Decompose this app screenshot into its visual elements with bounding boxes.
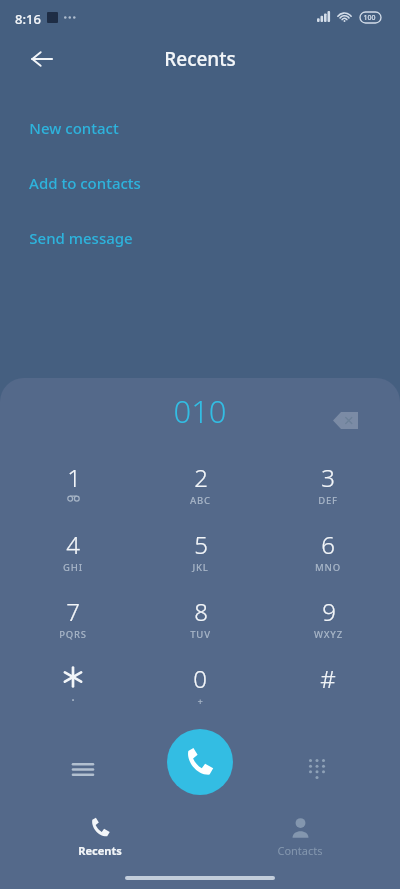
staticText: 2 [194, 461, 208, 494]
button[interactable]: 3 [273, 461, 383, 525]
button[interactable]: Send message [0, 215, 360, 261]
button[interactable]: 5 [145, 528, 255, 592]
button[interactable]: Recents [0, 806, 200, 868]
button[interactable]: Backspace [325, 400, 365, 440]
staticText: 100 [363, 13, 376, 23]
button[interactable]: New contact [0, 105, 360, 151]
staticText: + [197, 695, 204, 708]
staticText: Contacts [277, 843, 323, 858]
staticText: 1 [67, 461, 81, 494]
button[interactable]: More options [59, 745, 107, 793]
button[interactable]: Add to contacts [0, 160, 360, 206]
staticText: MNO [315, 561, 341, 574]
staticText: · [71, 692, 75, 707]
button[interactable]: 7 [18, 595, 128, 659]
staticText: WXYZ [314, 628, 343, 641]
staticText: PQRS [59, 628, 87, 641]
button[interactable]: 6 [273, 528, 383, 592]
staticText: New contact [29, 118, 119, 138]
button[interactable]: 9 [273, 595, 383, 659]
button[interactable]: 8 [145, 595, 255, 659]
button[interactable]: # [273, 662, 383, 726]
button[interactable]: Call [167, 729, 233, 795]
staticText: 0 [193, 662, 207, 695]
staticText: 3 [321, 461, 335, 494]
button[interactable]: 0 [145, 662, 255, 726]
staticText: Send message [29, 228, 133, 248]
button[interactable]: 4 [18, 528, 128, 592]
staticText: 6 [321, 528, 335, 561]
staticText: 9 [322, 595, 336, 628]
staticText: Recents [164, 46, 236, 72]
staticText: 5 [194, 528, 208, 561]
button[interactable]: Keypad [293, 745, 341, 793]
staticText: 7 [66, 595, 80, 628]
staticText: TUV [190, 628, 211, 641]
button[interactable]: 2 [145, 461, 255, 525]
staticText: Add to contacts [29, 173, 141, 193]
staticText: Recents [78, 843, 122, 858]
staticText: 8:16 [15, 10, 41, 28]
button[interactable]: Back [22, 39, 62, 79]
button[interactable]: Contacts [200, 806, 400, 868]
staticText: 010 [173, 390, 227, 432]
staticText: 8 [194, 595, 208, 628]
staticText: # [320, 662, 336, 695]
staticText: GHI [63, 561, 83, 574]
staticText: JKL [192, 561, 209, 574]
button[interactable]: · [18, 662, 128, 726]
staticText: 4 [66, 528, 80, 561]
button[interactable]: 1 [18, 461, 128, 525]
staticText: ABC [190, 494, 211, 507]
staticText: DEF [318, 494, 338, 507]
